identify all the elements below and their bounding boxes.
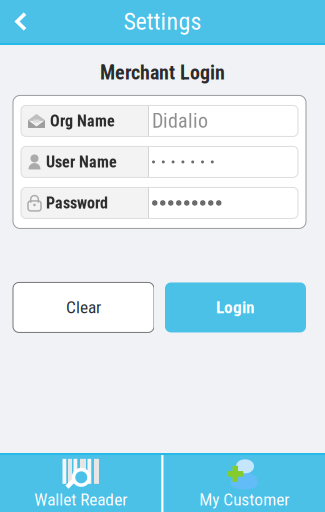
staticText: Merchant Login xyxy=(100,61,225,84)
button[interactable]: Clear xyxy=(13,282,154,332)
button[interactable]: My Customer xyxy=(163,455,325,512)
staticText: Clear xyxy=(66,297,101,318)
staticText: Org Name xyxy=(50,112,115,130)
staticText: User Name xyxy=(46,153,117,171)
staticText: Didalio xyxy=(152,109,208,133)
staticText: Wallet Reader xyxy=(34,489,127,510)
staticText: Password xyxy=(46,194,108,212)
button[interactable]: Login xyxy=(165,282,306,332)
staticText: My Customer xyxy=(199,489,289,510)
staticText: Settings xyxy=(123,7,201,35)
staticText: Login xyxy=(216,297,255,318)
button[interactable]: Back xyxy=(0,0,42,43)
button[interactable]: Wallet Reader xyxy=(0,455,161,512)
